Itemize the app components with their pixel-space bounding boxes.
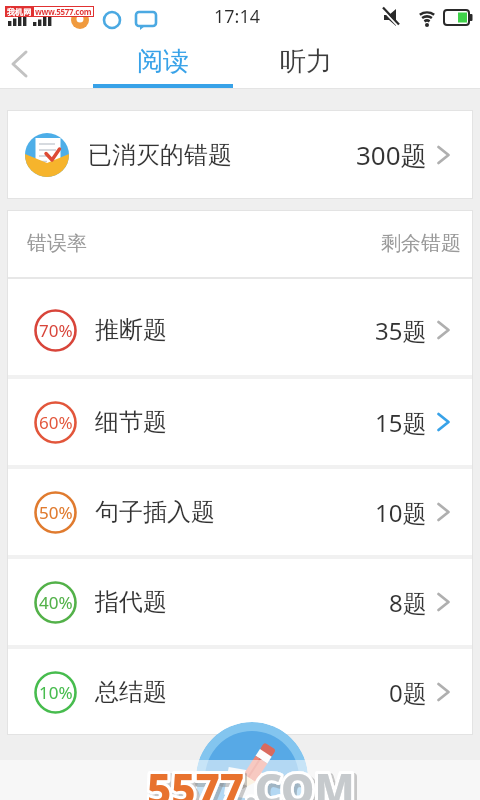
staticText: 10% <box>39 681 73 704</box>
staticText: 5577 <box>149 763 247 800</box>
staticText: 70% <box>39 319 73 342</box>
staticText: 5577 <box>147 760 245 800</box>
staticText: 10题 <box>375 496 427 529</box>
staticText: 阅读 <box>137 45 189 78</box>
button[interactable]: 40% <box>7 555 473 645</box>
button[interactable] <box>6 50 38 80</box>
staticText: 错误率 <box>27 231 87 256</box>
staticText: 8题 <box>389 586 427 619</box>
button[interactable] <box>196 722 308 800</box>
button[interactable]: 听力 <box>236 39 376 84</box>
button[interactable]: 50% <box>7 465 473 555</box>
button[interactable]: 70% <box>7 285 473 375</box>
staticText: 剩余错题 <box>381 231 461 256</box>
staticText: 0题 <box>389 676 427 709</box>
staticText: 50% <box>39 501 73 524</box>
staticText: 听力 <box>280 45 332 78</box>
staticText: 细节题 <box>95 407 167 437</box>
staticText: 已消灭的错题 <box>88 140 232 170</box>
staticText: 指代题 <box>95 587 167 617</box>
staticText: 17:14 <box>214 4 261 29</box>
staticText: 句子插入题 <box>95 497 215 527</box>
staticText: .COM <box>245 760 355 800</box>
staticText: .COM <box>245 760 355 800</box>
staticText: 40% <box>39 591 73 614</box>
staticText: 35题 <box>375 314 427 347</box>
button[interactable]: 10% <box>7 645 473 735</box>
button[interactable]: 阅读 <box>93 39 233 84</box>
staticText: 我机网 <box>7 7 31 17</box>
staticText: .COM <box>247 763 357 800</box>
staticText: 推断题 <box>95 315 167 345</box>
staticText: 60% <box>39 411 73 434</box>
button[interactable]: 60% <box>7 375 473 465</box>
staticText: 总结题 <box>95 677 167 707</box>
staticText: 15题 <box>375 406 427 439</box>
button[interactable]: 已消灭的错题 <box>7 110 473 199</box>
staticText: 5577 <box>147 760 245 800</box>
staticText: 300题 <box>356 137 427 173</box>
staticText: www.5577.com <box>35 6 92 17</box>
